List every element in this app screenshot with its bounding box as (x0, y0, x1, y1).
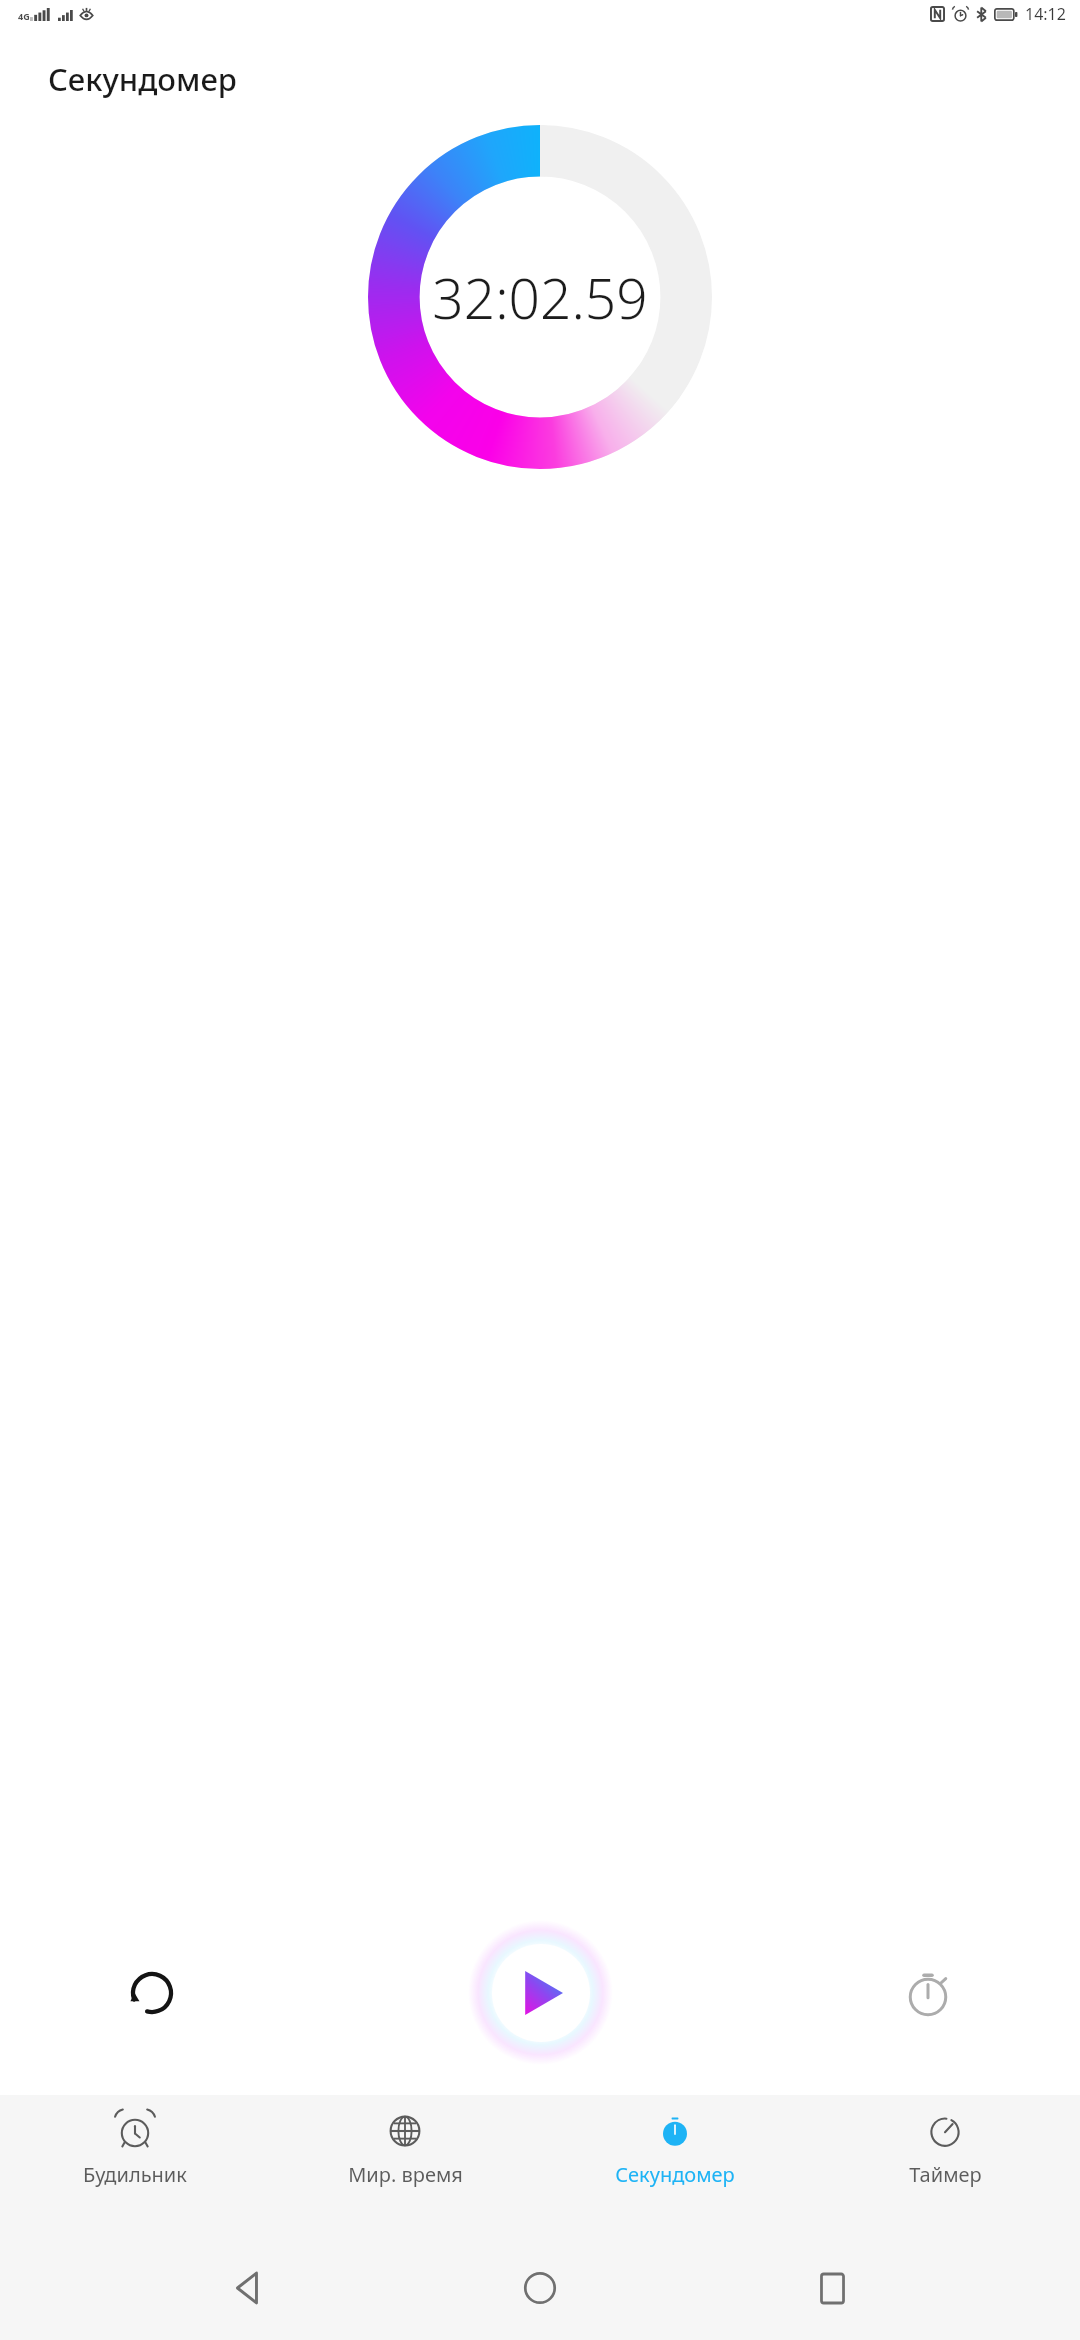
button[interactable]: Таймер (810, 2095, 1080, 2235)
staticText: Секундомер (615, 2161, 735, 2188)
staticText: 4G (18, 10, 30, 22)
button[interactable]: Старт (492, 1944, 590, 2042)
button[interactable]: Мир. время (270, 2095, 540, 2235)
staticText: Секундомер (48, 58, 237, 100)
button[interactable]: Назад (206, 2245, 292, 2331)
staticText: Мир. время (348, 2161, 463, 2188)
staticText: Будильник (83, 2161, 187, 2188)
button[interactable]: Будильник (0, 2095, 270, 2235)
staticText: Таймер (909, 2161, 982, 2188)
staticText: 14:12 (1025, 3, 1066, 25)
staticText: 32:02.59 (432, 260, 648, 335)
button[interactable]: Главный экран (497, 2245, 583, 2331)
button[interactable]: Круг (888, 1953, 968, 2033)
button[interactable]: Секундомер (540, 2095, 810, 2235)
button[interactable]: Сбросить (112, 1953, 192, 2033)
button[interactable]: Обзор (789, 2245, 875, 2331)
